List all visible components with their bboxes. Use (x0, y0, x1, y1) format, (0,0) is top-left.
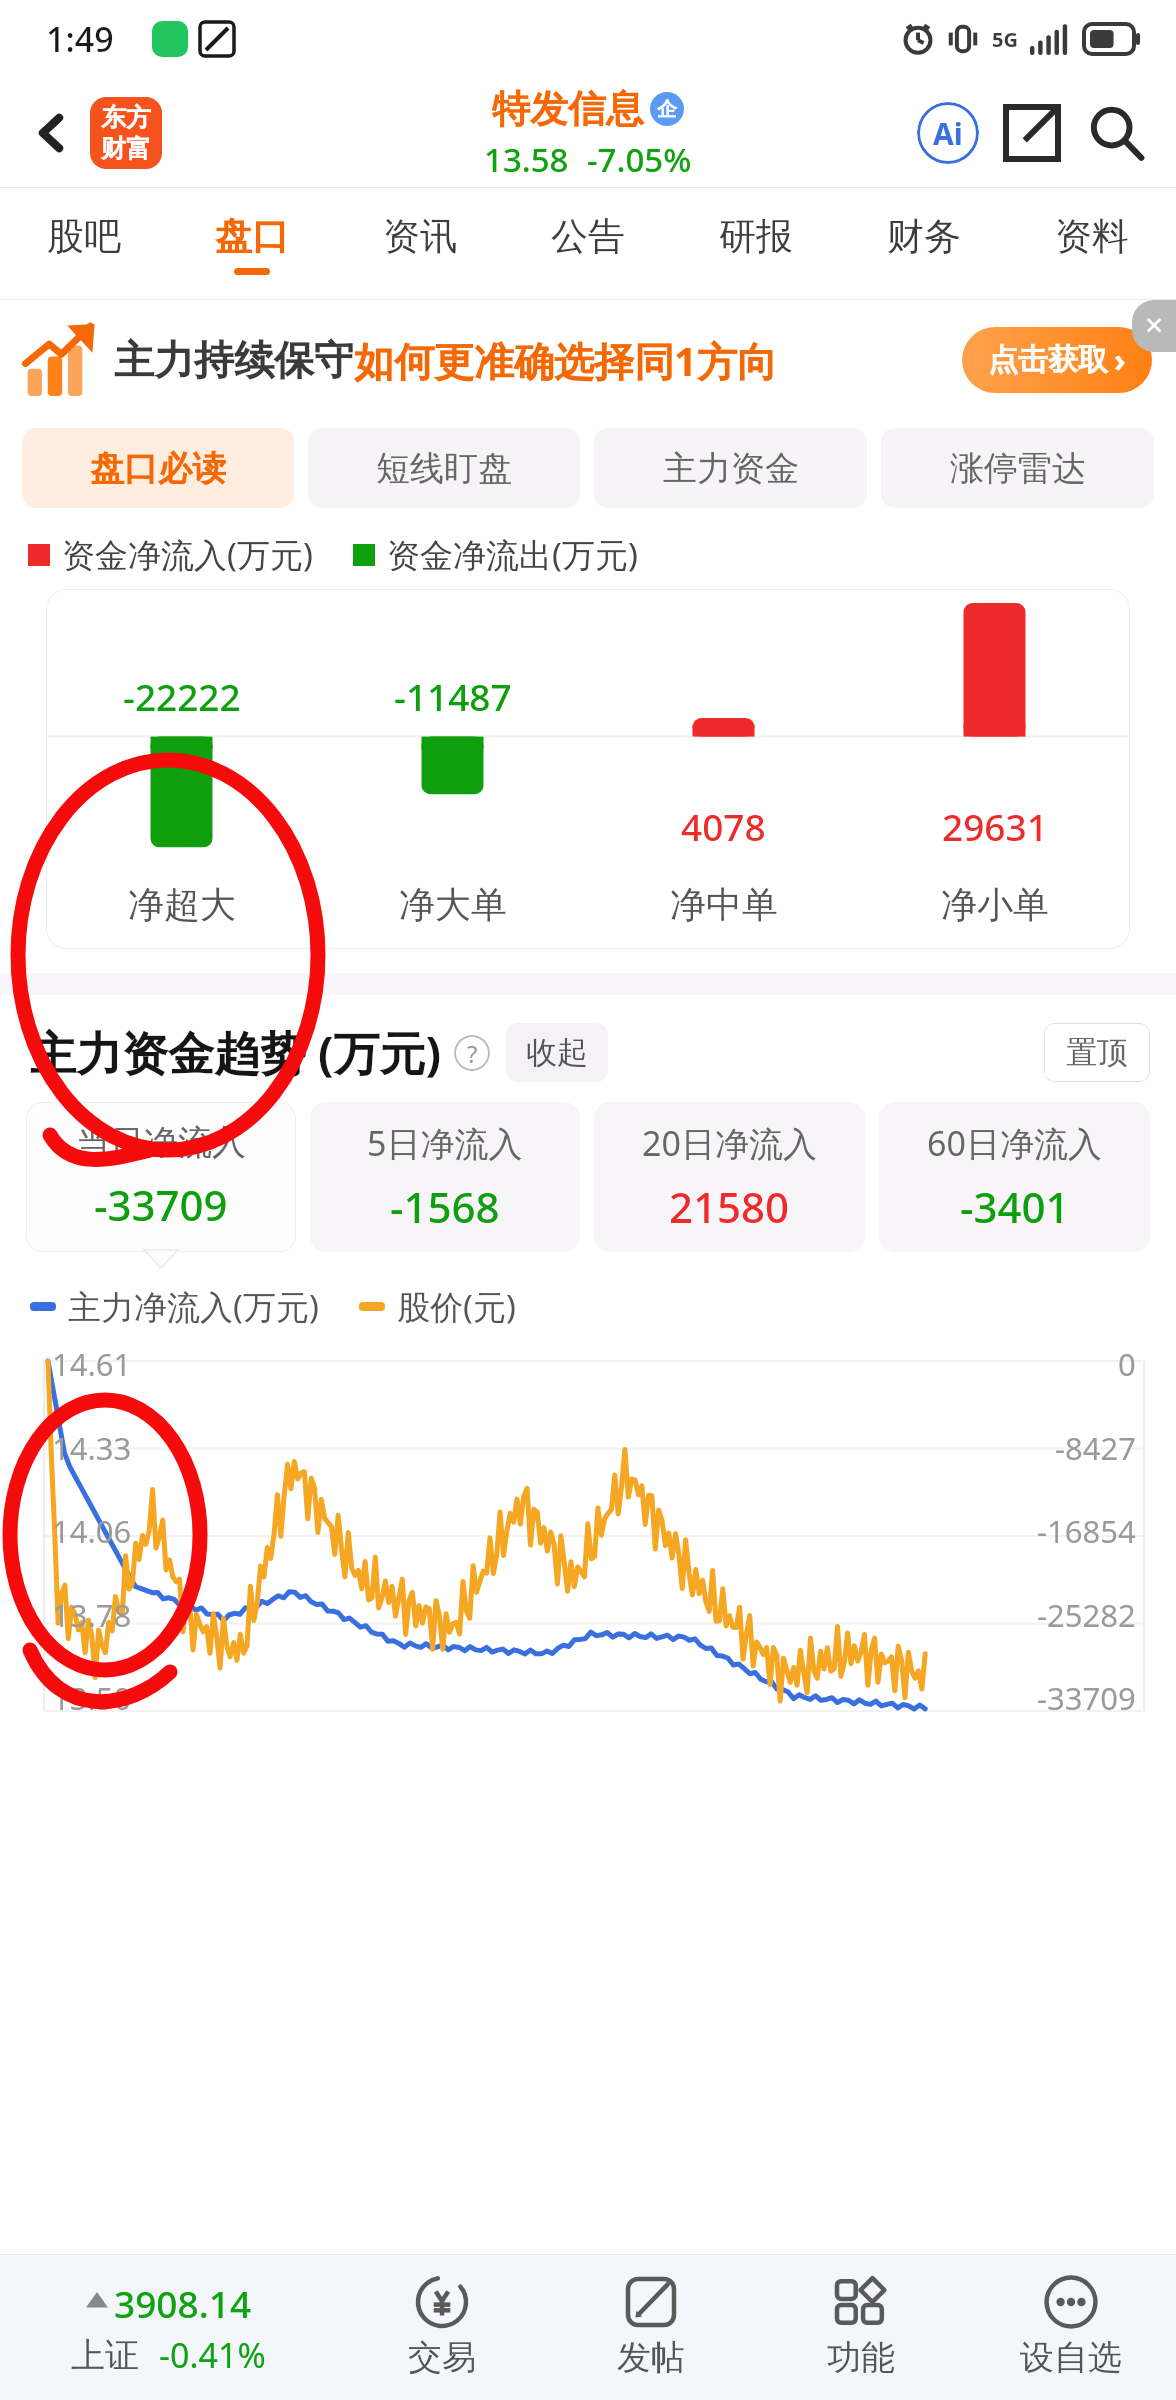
button[interactable]: 盘口必读 (22, 428, 294, 508)
staticText: 13.58 (484, 137, 569, 182)
button[interactable]: 29631 (859, 589, 1130, 949)
staticText: 功能 (827, 2336, 895, 2379)
staticText: 发帖 (617, 2336, 685, 2379)
staticText: 主力持续保守 (114, 335, 354, 385)
staticText: 上证 (71, 2334, 139, 2377)
staticText: -33709 (1037, 1677, 1136, 1719)
staticText: 净大单 (399, 882, 507, 927)
staticText: ✕ (1144, 312, 1165, 340)
staticText: › (1114, 338, 1126, 382)
button[interactable]: 主力资金 (594, 428, 867, 508)
button[interactable]: 5日净流入 (310, 1102, 580, 1252)
staticText: 1:49 (46, 16, 114, 62)
staticText: 股吧 (47, 213, 121, 260)
button[interactable]: -11487 (317, 589, 588, 949)
staticText: 交易 (408, 2336, 476, 2379)
staticText: 60日净流入 (927, 1120, 1102, 1166)
button[interactable]: 功能 (756, 2255, 966, 2400)
staticText: -1568 (390, 1178, 500, 1235)
button[interactable]: 收起 (506, 1023, 608, 1082)
staticText: 资料 (1055, 213, 1129, 260)
staticText: 14.06 (52, 1510, 132, 1552)
staticText: 主力资金 (663, 447, 799, 490)
staticText: 企 (657, 97, 677, 122)
button[interactable]: Search (1074, 91, 1158, 175)
staticText: 点击获取 (988, 341, 1108, 379)
staticText: 13.50 (52, 1677, 132, 1719)
button[interactable]: 短线盯盘 (308, 428, 580, 508)
staticText: 14.61 (52, 1343, 132, 1385)
staticText: -33709 (94, 1176, 228, 1233)
button[interactable]: Close ad (1132, 300, 1176, 352)
button[interactable]: 交易 (337, 2255, 546, 2400)
button[interactable]: 点击获取 (962, 327, 1152, 393)
staticText: 收起 (526, 1033, 588, 1072)
button[interactable]: 60日净流入 (879, 1102, 1150, 1252)
staticText: -0.41% (159, 2332, 266, 2378)
staticText: 20日净流入 (642, 1120, 817, 1166)
staticText: 设自选 (1020, 2336, 1122, 2379)
staticText: 13.78 (52, 1594, 132, 1636)
button[interactable]: 公告 (504, 188, 672, 300)
staticText: -22222 (123, 671, 241, 721)
staticText: 0 (1118, 1343, 1136, 1385)
staticText: 29631 (942, 801, 1048, 851)
button[interactable]: 资料 (1008, 188, 1176, 300)
button[interactable]: 4078 (588, 589, 859, 949)
staticText: 研报 (719, 213, 793, 260)
staticText: 财富 (101, 133, 151, 164)
button[interactable]: 财务 (840, 188, 1008, 300)
button[interactable]: 股吧 (0, 188, 168, 300)
button[interactable]: 20日净流入 (594, 1102, 865, 1252)
staticText: 14.33 (52, 1427, 132, 1469)
staticText: 净中单 (670, 882, 778, 927)
button[interactable]: 当日净流入 (26, 1102, 296, 1252)
staticText: 盘口必读 (90, 447, 226, 490)
staticText: 4078 (681, 801, 766, 851)
button[interactable]: Share (990, 91, 1074, 175)
staticText: 净小单 (941, 882, 1049, 927)
button[interactable]: 设自选 (966, 2255, 1176, 2400)
button[interactable]: East Money (90, 97, 162, 169)
staticText: 当日净流入 (76, 1121, 246, 1164)
staticText: 主力资金趋势 (万元) (30, 1021, 442, 1084)
button[interactable]: 盘口 (168, 188, 336, 300)
staticText: 净超大 (128, 882, 236, 927)
staticText: 主力净流入(万元) (68, 1284, 319, 1329)
staticText: 股价(元) (397, 1284, 516, 1329)
button[interactable]: 置顶 (1044, 1023, 1150, 1082)
staticText: -3401 (960, 1178, 1070, 1235)
staticText: 资金净流出(万元) (387, 532, 638, 577)
staticText: 涨停雷达 (950, 447, 1086, 490)
staticText: 5G (992, 26, 1018, 53)
staticText: 资讯 (383, 213, 457, 260)
button[interactable]: 3908.14 (0, 2255, 337, 2400)
staticText: ? (467, 1037, 478, 1070)
button[interactable]: 研报 (672, 188, 840, 300)
staticText: -25282 (1037, 1594, 1136, 1636)
staticText: Ai (933, 113, 963, 154)
staticText: 公告 (551, 213, 625, 260)
staticText: 5日净流入 (367, 1120, 523, 1166)
staticText: -16854 (1037, 1510, 1136, 1552)
staticText: 21580 (669, 1178, 790, 1235)
staticText: 短线盯盘 (376, 447, 512, 490)
staticText: 资金净流入(万元) (62, 532, 313, 577)
staticText: -8427 (1055, 1427, 1136, 1469)
button[interactable]: Back (14, 95, 90, 171)
button[interactable]: AI (906, 91, 990, 175)
button[interactable]: 发帖 (546, 2255, 756, 2400)
staticText: 东方 (101, 102, 151, 133)
staticText: 置顶 (1066, 1033, 1128, 1072)
staticText: 特发信息 (492, 85, 644, 133)
button[interactable]: Help (454, 1035, 490, 1071)
button[interactable]: -22222 (46, 589, 317, 949)
button[interactable]: 特发信息 (484, 85, 692, 182)
staticText: 盘口 (215, 213, 289, 260)
button[interactable]: 资讯 (336, 188, 504, 300)
staticText: 3908.14 (114, 2278, 252, 2328)
staticText: 财务 (887, 213, 961, 260)
button[interactable]: 主力持续保守 (24, 300, 1152, 420)
staticText: -7.05% (587, 137, 692, 182)
button[interactable]: 涨停雷达 (881, 428, 1154, 508)
